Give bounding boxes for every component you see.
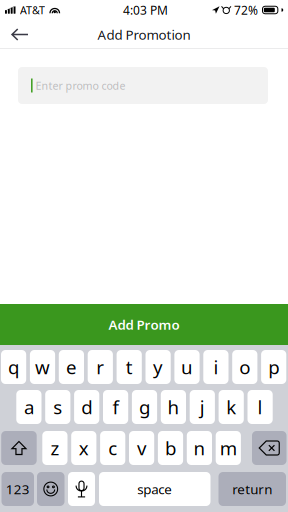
staticText: g xyxy=(139,395,150,419)
staticText: i xyxy=(213,355,218,379)
button[interactable]: x xyxy=(71,431,96,465)
button[interactable]: f xyxy=(103,390,128,424)
button[interactable]: h xyxy=(161,390,186,424)
staticText: 123 xyxy=(6,480,30,498)
staticText: c xyxy=(108,436,117,460)
button[interactable]: v xyxy=(129,431,154,465)
button[interactable]: Back xyxy=(0,21,40,48)
staticText: b xyxy=(165,436,176,460)
staticText: s xyxy=(53,395,62,419)
button[interactable]: p xyxy=(261,350,286,384)
button[interactable]: d xyxy=(74,390,99,424)
staticText: z xyxy=(50,436,59,460)
staticText: f xyxy=(113,395,119,419)
staticText: o xyxy=(239,355,250,379)
staticText: 4:03 PM xyxy=(123,2,168,18)
button[interactable]: g xyxy=(132,390,157,424)
button[interactable]: s xyxy=(45,390,70,424)
button[interactable]: e xyxy=(59,350,84,384)
button[interactable]: l xyxy=(247,390,273,424)
staticText: e xyxy=(66,355,77,379)
staticText: p xyxy=(268,355,279,379)
staticText: j xyxy=(200,395,205,419)
staticText: v xyxy=(137,436,146,460)
button[interactable]: return xyxy=(218,472,286,506)
button[interactable]: a xyxy=(16,390,41,424)
staticText: d xyxy=(81,395,92,419)
button[interactable]: z xyxy=(42,431,67,465)
button[interactable]: Shift xyxy=(1,431,37,465)
staticText: h xyxy=(167,395,179,419)
staticText: AT&T xyxy=(20,3,45,17)
staticText: u xyxy=(181,355,193,379)
staticText: Add Promotion xyxy=(97,26,190,43)
button[interactable]: b xyxy=(158,431,183,465)
staticText: 72% xyxy=(234,2,258,18)
button[interactable]: c xyxy=(100,431,125,465)
staticText: n xyxy=(193,436,205,460)
button[interactable]: o xyxy=(232,350,257,384)
button[interactable]: u xyxy=(174,350,200,384)
button[interactable]: 123 xyxy=(1,472,34,506)
button[interactable]: Delete xyxy=(252,431,286,465)
button[interactable]: n xyxy=(187,431,212,465)
staticText: a xyxy=(24,395,34,419)
staticText: return xyxy=(232,480,272,498)
button[interactable]: Dictate xyxy=(68,472,95,506)
button[interactable]: t xyxy=(117,350,142,384)
staticText: r xyxy=(96,355,104,379)
button[interactable]: Add Promo xyxy=(0,304,288,345)
staticText: y xyxy=(153,355,163,379)
button[interactable]: m xyxy=(216,431,241,465)
button[interactable]: space xyxy=(99,472,210,506)
staticText: w xyxy=(35,355,50,379)
button[interactable]: i xyxy=(203,350,228,384)
button[interactable]: w xyxy=(30,350,55,384)
staticText: l xyxy=(258,395,263,419)
button[interactable]: k xyxy=(219,390,244,424)
button[interactable]: Emoji xyxy=(37,472,64,506)
staticText: Enter promo code xyxy=(36,78,126,93)
button[interactable]: j xyxy=(190,390,215,424)
staticText: x xyxy=(79,436,89,460)
button[interactable]: r xyxy=(88,350,113,384)
staticText: t xyxy=(126,355,133,379)
staticText: k xyxy=(226,395,236,419)
staticText: q xyxy=(8,355,19,379)
button[interactable]: q xyxy=(1,350,26,384)
staticText: m xyxy=(220,436,237,460)
staticText: Add Promo xyxy=(108,316,179,333)
staticText: space xyxy=(137,480,172,498)
button[interactable]: y xyxy=(145,350,171,384)
